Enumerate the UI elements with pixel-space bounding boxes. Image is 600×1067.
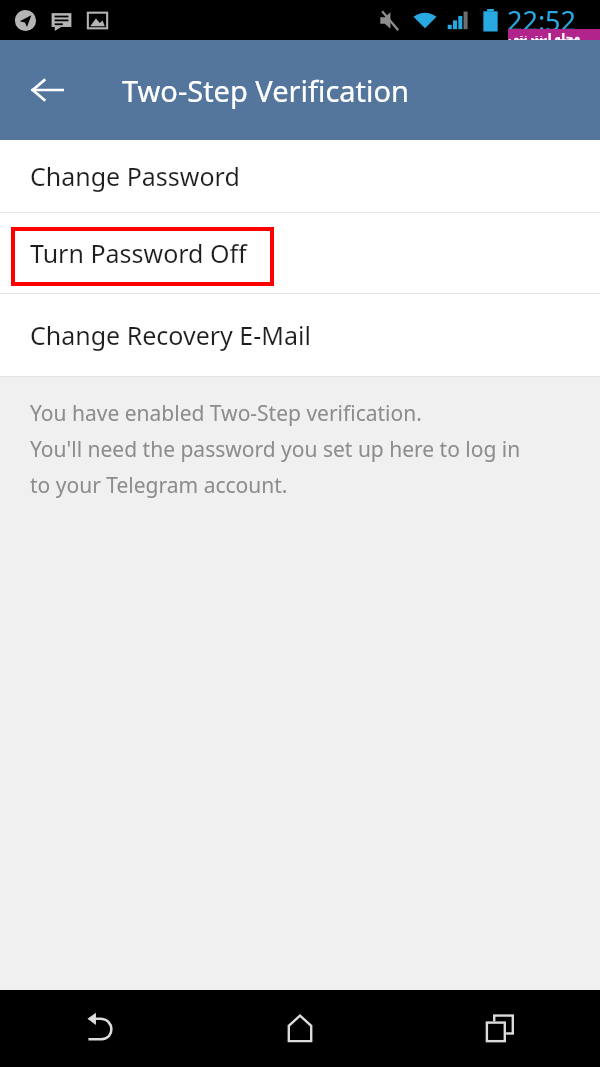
staticText: You have enabled Two-Step verification.	[30, 399, 422, 428]
button[interactable]: Home	[200, 990, 400, 1067]
staticText: مجله اینترنتی ستاره	[508, 29, 600, 50]
button[interactable]: Change Password	[0, 140, 600, 212]
button[interactable]: Back	[22, 65, 72, 115]
staticText: Turn Password Off	[30, 236, 247, 270]
button[interactable]: Back	[0, 990, 200, 1067]
button[interactable]: Recent apps	[400, 990, 600, 1067]
button[interactable]: Change Recovery E-Mail	[0, 294, 600, 376]
staticText: 22:52	[507, 2, 577, 39]
button[interactable]: Turn Password Off	[0, 213, 600, 293]
staticText: Two-Step Verification	[122, 71, 410, 110]
staticText: Change Recovery E-Mail	[30, 318, 311, 352]
staticText: You'll need the password you set up here…	[30, 435, 521, 464]
staticText: Change Password	[30, 159, 240, 193]
staticText: to your Telegram account.	[30, 471, 288, 500]
